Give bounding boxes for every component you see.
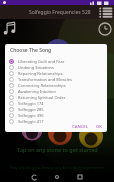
button[interactable]: Solfeggio 285 xyxy=(5,106,107,112)
button[interactable]: Solfeggio 174 xyxy=(5,100,107,106)
button[interactable]: Now playing xyxy=(3,21,18,36)
staticText: Awakening Intuition xyxy=(18,89,56,94)
staticText: Liberating Guilt and Fear xyxy=(18,59,65,64)
button[interactable]: Undoing Situations xyxy=(5,64,107,70)
staticText: Solfeggio 285 xyxy=(18,107,44,112)
button[interactable]: Playlist xyxy=(98,5,113,19)
staticText: OK xyxy=(96,124,102,129)
button[interactable]: CANCEL xyxy=(71,124,89,129)
button[interactable]: Repairing Relationships xyxy=(5,70,107,76)
staticText: Choose The Song xyxy=(10,47,52,54)
button[interactable]: Solfeggio 396 xyxy=(5,112,107,118)
staticText: Returning Spiritual Order xyxy=(18,95,66,100)
staticText: Tap on any stone to get started xyxy=(17,146,98,153)
button[interactable]: Solfeggio 417 xyxy=(5,118,107,124)
button[interactable]: Back xyxy=(28,172,40,182)
button[interactable]: Returning Spiritual Order xyxy=(5,94,107,100)
staticText: Transformation and Miracles xyxy=(18,77,72,82)
staticText: Undoing Situations xyxy=(18,65,54,70)
button[interactable]: Connecting Relationships xyxy=(5,82,107,88)
button[interactable]: OK xyxy=(95,124,103,129)
staticText: CANCEL xyxy=(72,124,88,129)
button[interactable]: Timer xyxy=(98,22,112,36)
button[interactable]: Transformation and Miracles xyxy=(5,76,107,82)
staticText: Connecting Relationships xyxy=(18,83,66,88)
staticText: Play a Solfeggio frequency for a daily e… xyxy=(9,165,105,171)
button[interactable]: Home xyxy=(51,172,63,182)
button[interactable]: Awakening Intuition xyxy=(5,88,107,94)
staticText: Solfeggio 417 xyxy=(18,119,44,124)
button[interactable]: Recent apps xyxy=(74,172,86,182)
staticText: Solfeggio 174 xyxy=(18,101,44,106)
button[interactable]: Liberating Guilt and Fear xyxy=(5,58,107,64)
staticText: Repairing Relationships xyxy=(18,71,63,76)
staticText: Solfeggio Frequencies 528 xyxy=(29,9,91,16)
staticText: Solfeggio 396 xyxy=(18,113,44,118)
